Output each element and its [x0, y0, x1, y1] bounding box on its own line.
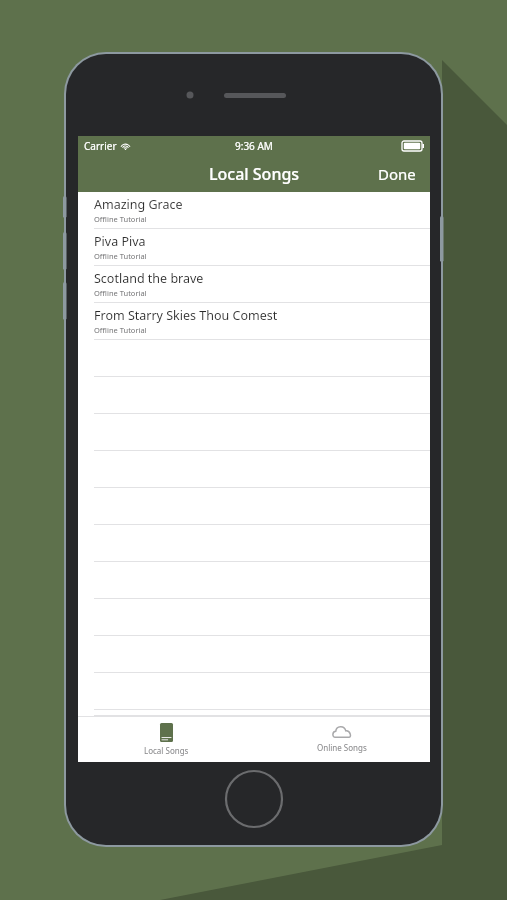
staticText: Amazing Grace — [94, 196, 183, 213]
staticText: Online Songs — [317, 742, 367, 753]
button[interactable]: Piva Piva — [78, 229, 430, 266]
button[interactable]: Amazing Grace — [78, 192, 430, 229]
button[interactable]: Local Songs — [78, 716, 254, 762]
staticText: Scotland the brave — [94, 270, 204, 287]
button[interactable]: Scotland the brave — [78, 266, 430, 303]
button[interactable]: From Starry Skies Thou Comest — [78, 303, 430, 340]
staticText: Offline Tutorial — [94, 214, 147, 224]
staticText: Piva Piva — [94, 233, 146, 250]
other: Local Songs — [160, 723, 173, 742]
staticText: Offline Tutorial — [94, 325, 147, 335]
button[interactable]: Done — [364, 158, 430, 190]
staticText: Carrier — [84, 139, 117, 153]
button[interactable]: Online Songs — [254, 716, 430, 762]
staticText: Done — [378, 164, 416, 184]
staticText: Local Songs — [144, 745, 189, 756]
staticText: Offline Tutorial — [94, 288, 147, 298]
staticText: Offline Tutorial — [94, 251, 147, 261]
other: Online Songs — [332, 725, 352, 739]
staticText: Local Songs — [209, 163, 300, 185]
staticText: From Starry Skies Thou Comest — [94, 307, 278, 324]
staticText: 9:36 AM — [235, 139, 273, 153]
